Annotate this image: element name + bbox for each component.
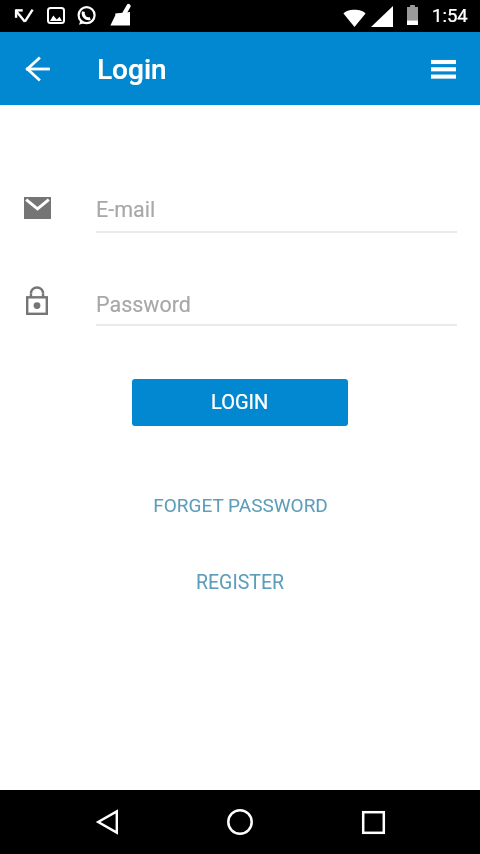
- button[interactable]: Password field: [16, 282, 464, 332]
- staticText: 1:54: [432, 5, 468, 27]
- button[interactable]: FORGET PASSWORD: [0, 491, 480, 519]
- staticText: LOGIN: [211, 390, 269, 413]
- button[interactable]: Back: [14, 45, 61, 92]
- button[interactable]: E-mail field: [16, 189, 464, 239]
- staticText: E-mail: [96, 197, 156, 222]
- staticText: Password: [96, 292, 191, 317]
- staticText: REGISTER: [196, 571, 284, 594]
- button[interactable]: Recents: [349, 798, 397, 846]
- button[interactable]: Back: [83, 798, 131, 846]
- staticText: Login: [97, 53, 167, 86]
- button[interactable]: Menu: [420, 47, 466, 93]
- staticText: FORGET PASSWORD: [153, 494, 328, 516]
- button[interactable]: LOGIN: [132, 379, 348, 426]
- button[interactable]: REGISTER: [0, 568, 480, 596]
- button[interactable]: Home: [216, 798, 264, 846]
